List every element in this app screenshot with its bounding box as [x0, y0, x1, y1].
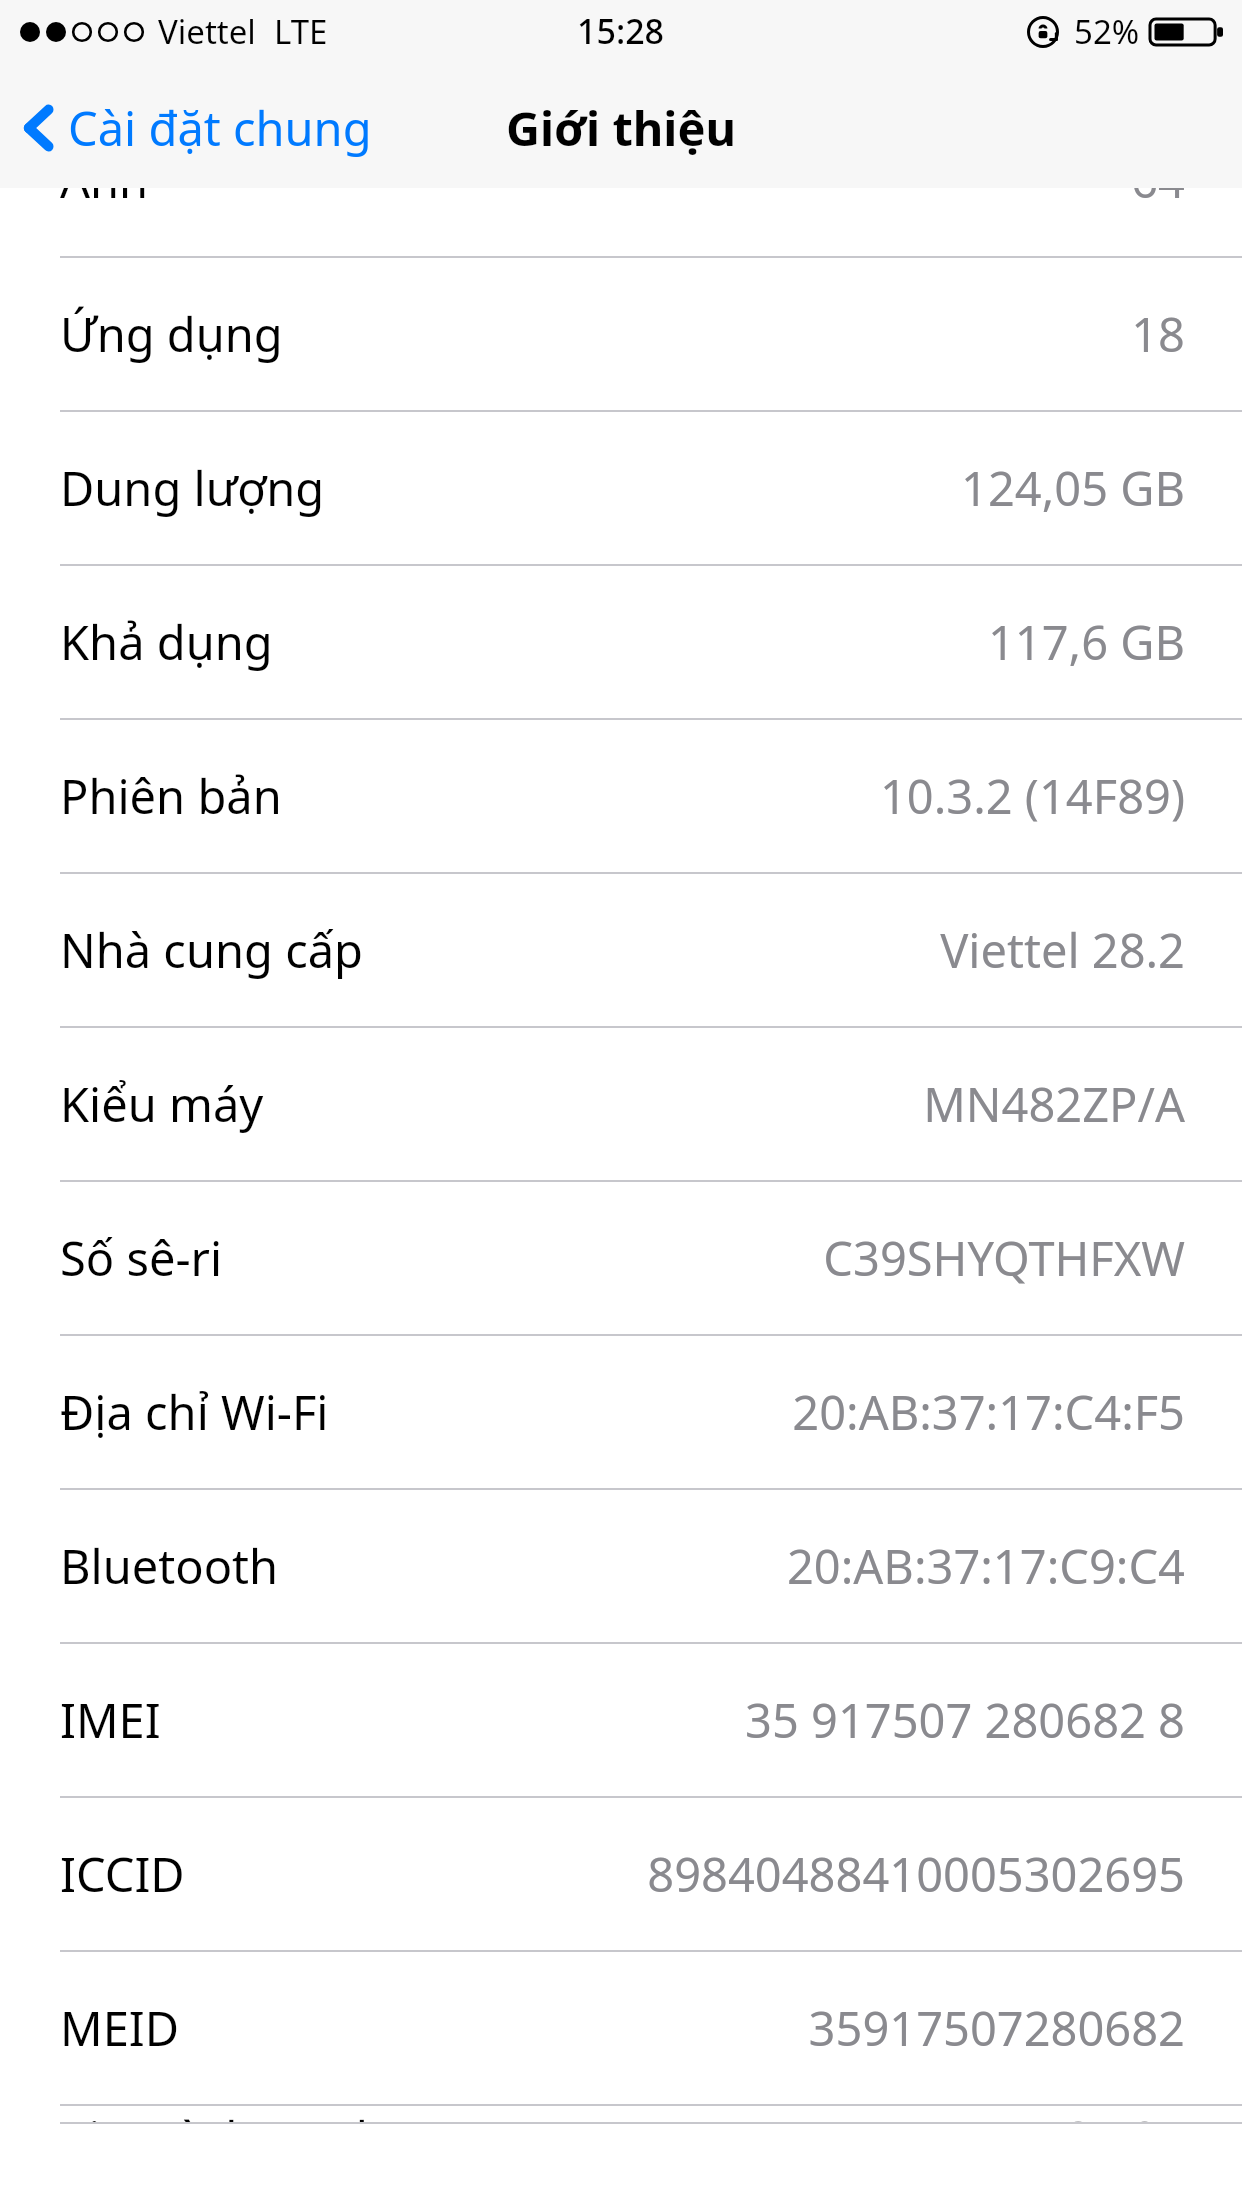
staticText: ICCID: [60, 1842, 185, 1906]
staticText: C39SHYQTHFXW: [823, 1226, 1185, 1290]
staticText: IMEI: [60, 1688, 161, 1752]
button[interactable]: Khả dụng: [0, 566, 1242, 720]
staticText: Địa chỉ Wi-Fi: [60, 1380, 329, 1444]
staticText: Vi c.trình modem: [60, 2106, 439, 2124]
staticText: 20:AB:37:17:C4:F5: [792, 1380, 1185, 1444]
button[interactable]: Kiểu máy: [0, 1028, 1242, 1182]
staticText: 18: [1131, 302, 1185, 366]
button[interactable]: Phiên bản: [0, 720, 1242, 874]
button[interactable]: IMEI: [0, 1644, 1242, 1798]
button[interactable]: Địa chỉ Wi-Fi: [0, 1336, 1242, 1490]
staticText: LTE: [274, 9, 328, 54]
staticText: 35 917507 280682 8: [745, 1688, 1185, 1752]
staticText: Dung lượng: [60, 456, 325, 520]
staticText: Ứng dụng: [60, 302, 283, 366]
staticText: 124,05 GB: [960, 456, 1185, 520]
staticText: Kiểu máy: [60, 1072, 264, 1136]
button[interactable]: Ảnh: [0, 188, 1242, 258]
staticText: 64: [1131, 188, 1185, 212]
button[interactable]: ICCID: [0, 1798, 1242, 1952]
staticText: 89840488410005302695: [647, 1842, 1185, 1906]
staticText: 35917507280682: [808, 1996, 1185, 2060]
staticText: Số sê-ri: [60, 1226, 223, 1290]
staticText: Khả dụng: [60, 610, 273, 674]
staticText: 52%: [1074, 9, 1140, 54]
button[interactable]: Cài đặt chung: [22, 68, 372, 188]
staticText: MN482ZP/A: [923, 1072, 1185, 1136]
staticText: 10.3.2 (14F89): [879, 764, 1185, 828]
button[interactable]: Nhà cung cấp: [0, 874, 1242, 1028]
staticText: Giới thiệu: [506, 96, 736, 160]
button[interactable]: Bluetooth: [0, 1490, 1242, 1644]
staticText: 20:AB:37:17:C9:C4: [786, 1534, 1185, 1598]
button[interactable]: Số sê-ri: [0, 1182, 1242, 1336]
button[interactable]: Ứng dụng: [0, 258, 1242, 412]
button[interactable]: MEID: [0, 1952, 1242, 2106]
staticText: Nhà cung cấp: [60, 918, 363, 982]
button[interactable]: Vi c.trình modem: [0, 2106, 1242, 2124]
staticText: Phiên bản: [60, 764, 282, 828]
staticText: Bluetooth: [60, 1534, 279, 1598]
staticText: 15:28: [577, 8, 665, 54]
staticText: Viettel 28.2: [940, 918, 1185, 982]
staticText: 1.81.01: [1025, 2106, 1185, 2124]
staticText: Viettel: [158, 9, 256, 54]
staticText: MEID: [60, 1996, 180, 2060]
staticText: 117,6 GB: [987, 610, 1185, 674]
button[interactable]: Dung lượng: [0, 412, 1242, 566]
staticText: Ảnh: [60, 188, 149, 212]
staticText: Cài đặt chung: [68, 96, 372, 160]
